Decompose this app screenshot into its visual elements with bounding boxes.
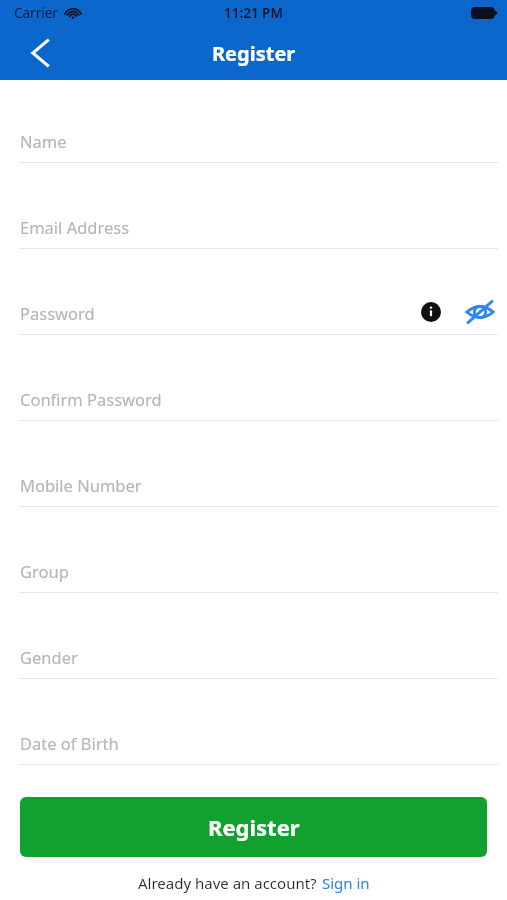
staticText: Mobile Number: [20, 474, 142, 496]
staticText: Name: [20, 130, 67, 152]
button[interactable]: Register: [20, 797, 487, 857]
button[interactable]: Password: [0, 281, 507, 367]
staticText: Confirm Password: [20, 388, 162, 410]
staticText: Gender: [20, 646, 78, 668]
button[interactable]: Gender: [0, 625, 507, 711]
staticText: Email Address: [20, 216, 130, 238]
button[interactable]: Email Address: [0, 195, 507, 281]
button[interactable]: Name: [0, 109, 507, 195]
button[interactable]: Back: [18, 31, 62, 75]
button[interactable]: Mobile Number: [0, 453, 507, 539]
button[interactable]: Password info: [414, 295, 448, 329]
staticText: Register: [212, 40, 296, 67]
staticText: Already have an account?: [138, 873, 317, 893]
button[interactable]: Date of Birth: [0, 711, 507, 797]
staticText: Carrier: [14, 4, 58, 22]
staticText: Password: [20, 302, 95, 324]
staticText: Sign in: [322, 873, 370, 893]
staticText: 11:21 PM: [224, 4, 283, 22]
button[interactable]: Sign in: [322, 873, 370, 893]
staticText: Register: [208, 812, 300, 842]
staticText: Group: [20, 560, 69, 582]
button[interactable]: Group: [0, 539, 507, 625]
staticText: Date of Birth: [20, 732, 119, 754]
button[interactable]: Show password: [463, 295, 497, 329]
button[interactable]: Confirm Password: [0, 367, 507, 453]
